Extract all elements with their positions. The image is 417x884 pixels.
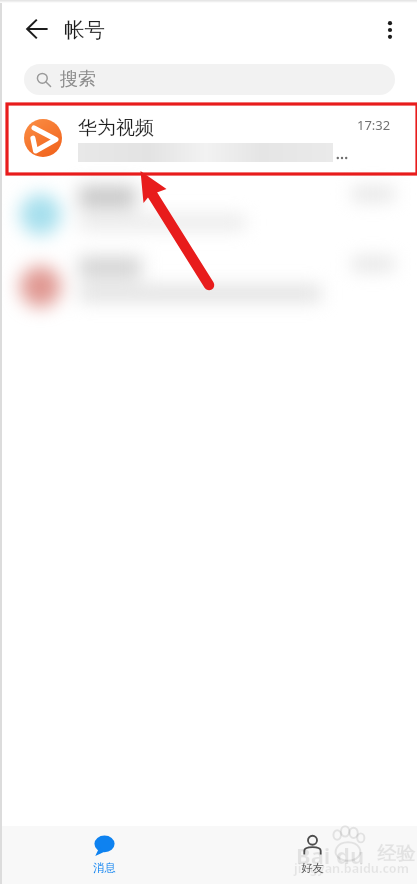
staticText: du bbox=[336, 840, 365, 870]
button[interactable] bbox=[0, 174, 417, 321]
button[interactable]: 华为视频 bbox=[0, 102, 417, 174]
staticText: 经验 bbox=[377, 842, 415, 866]
button[interactable]: More options bbox=[369, 9, 411, 51]
staticText: 17:32 bbox=[357, 116, 391, 134]
staticText: 华为视频 bbox=[78, 116, 154, 140]
button[interactable]: 好友 bbox=[208, 826, 417, 884]
button[interactable]: 消息 bbox=[0, 826, 208, 884]
staticText: jingyan.baidu.com bbox=[294, 860, 409, 877]
staticText: 好友 bbox=[301, 861, 324, 875]
staticText: 消息 bbox=[93, 861, 116, 875]
button[interactable]: 搜索 bbox=[24, 64, 395, 95]
staticText: Bai bbox=[296, 840, 331, 870]
staticText: 帐号 bbox=[64, 17, 105, 43]
staticText: 搜索 bbox=[60, 68, 96, 91]
button[interactable]: Back bbox=[14, 7, 60, 53]
